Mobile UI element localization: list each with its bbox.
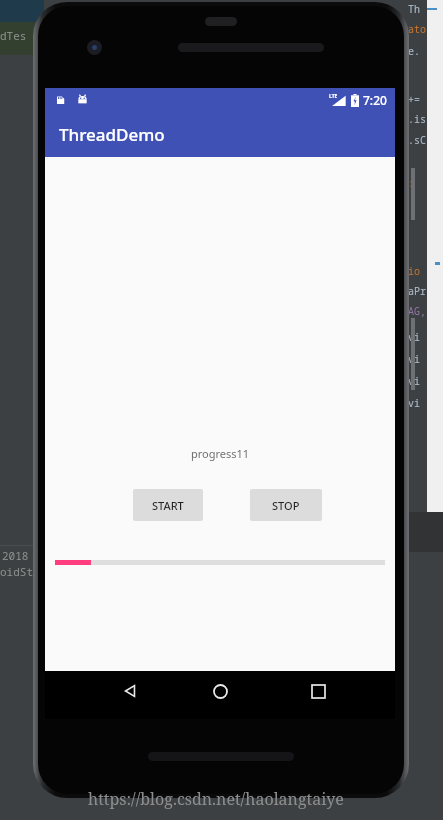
staticText: https://blog.csdn.net/haolangtaiye: [88, 788, 344, 810]
staticText: aPr: [408, 284, 426, 298]
staticText: :: [408, 176, 414, 190]
staticText: 2018: [2, 548, 29, 563]
staticText: 7:20: [363, 92, 387, 108]
button[interactable]: Home: [190, 671, 250, 711]
staticText: AG,: [408, 304, 426, 318]
staticText: ato: [408, 22, 426, 36]
staticText: START: [152, 498, 184, 513]
staticText: progress11: [45, 446, 395, 461]
staticText: .sC: [408, 133, 426, 147]
staticText: .is: [408, 112, 426, 126]
staticText: vi: [408, 396, 420, 410]
staticText: STOP: [272, 498, 300, 513]
staticText: dTes: [0, 28, 27, 43]
button[interactable]: STOP: [250, 489, 322, 521]
staticText: +=: [408, 92, 420, 106]
button[interactable]: Back: [100, 671, 160, 711]
staticText: oidSt: [0, 564, 33, 579]
staticText: e.: [408, 44, 420, 58]
button[interactable]: Recent apps: [288, 671, 348, 711]
staticText: Th: [408, 2, 420, 16]
staticText: LTE: [329, 93, 338, 100]
staticText: vi: [408, 374, 420, 388]
staticText: vi: [408, 330, 420, 344]
button[interactable]: START: [133, 489, 203, 521]
staticText: ThreadDemo: [59, 123, 165, 146]
staticText: vi: [408, 352, 420, 366]
staticText: io: [408, 264, 420, 278]
